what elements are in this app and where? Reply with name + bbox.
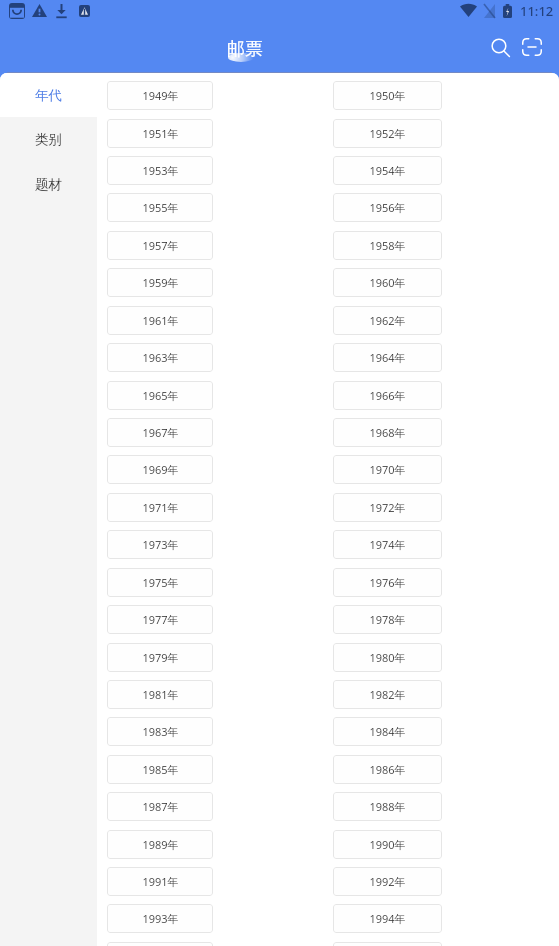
staticText: 1957年	[142, 238, 179, 253]
button[interactable]: 1995年	[107, 942, 213, 946]
button[interactable]: 1966年	[333, 381, 442, 410]
button[interactable]: 1963年	[107, 343, 213, 372]
button[interactable]: 1973年	[107, 530, 213, 559]
staticText: 1963年	[142, 350, 179, 365]
staticText: 1970年	[369, 462, 406, 477]
button[interactable]: 1952年	[333, 119, 442, 148]
button[interactable]: 1976年	[333, 568, 442, 597]
staticText: 1977年	[142, 612, 179, 627]
button[interactable]: 1965年	[107, 381, 213, 410]
button[interactable]: 1983年	[107, 717, 213, 746]
staticText: 1976年	[369, 575, 406, 590]
staticText: 1990年	[369, 837, 406, 852]
staticText: 1967年	[142, 425, 179, 440]
button[interactable]: 1959年	[107, 268, 213, 297]
staticText: 1973年	[142, 537, 179, 552]
staticText: 1952年	[369, 126, 406, 141]
staticText: 1969年	[142, 462, 179, 477]
staticText: 1986年	[369, 762, 406, 777]
button[interactable]: 1972年	[333, 493, 442, 522]
staticText: 1954年	[369, 163, 406, 178]
staticText: 1989年	[142, 837, 179, 852]
staticText: 1978年	[369, 612, 406, 627]
staticText: 1982年	[369, 687, 406, 702]
staticText: 1966年	[369, 388, 406, 403]
button[interactable]: 1979年	[107, 643, 213, 672]
staticText: 1974年	[369, 537, 406, 552]
button[interactable]: 1991年	[107, 867, 213, 896]
button[interactable]: 1957年	[107, 231, 213, 260]
button[interactable]: 1950年	[333, 81, 442, 110]
button[interactable]: 1968年	[333, 418, 442, 447]
button[interactable]: 1981年	[107, 680, 213, 709]
button[interactable]: 1971年	[107, 493, 213, 522]
button[interactable]: 1980年	[333, 643, 442, 672]
button[interactable]: 1955年	[107, 193, 213, 222]
staticText: 1972年	[369, 500, 406, 515]
staticText: 1975年	[142, 575, 179, 590]
button[interactable]: 1974年	[333, 530, 442, 559]
staticText: 1983年	[142, 724, 179, 739]
staticText: 1961年	[142, 313, 179, 328]
button[interactable]: 1994年	[333, 904, 442, 933]
staticText: 1955年	[142, 200, 179, 215]
staticText: 11:12	[520, 2, 554, 20]
staticText: 1953年	[142, 163, 179, 178]
staticText: 1991年	[142, 874, 179, 889]
staticText: 1988年	[369, 799, 406, 814]
staticText: 1962年	[369, 313, 406, 328]
button[interactable]: 题材	[0, 162, 97, 207]
button[interactable]: Scan code	[512, 27, 552, 67]
staticText: 1987年	[142, 799, 179, 814]
staticText: 邮票	[227, 38, 263, 61]
staticText: 1950年	[369, 88, 406, 103]
button[interactable]: 1975年	[107, 568, 213, 597]
button[interactable]: 1954年	[333, 156, 442, 185]
button[interactable]: 1990年	[333, 830, 442, 859]
staticText: 1960年	[369, 275, 406, 290]
staticText: 类别	[35, 131, 62, 148]
button[interactable]: 1977年	[107, 605, 213, 634]
button[interactable]: 1951年	[107, 119, 213, 148]
staticText: 1971年	[142, 500, 179, 515]
staticText: 1993年	[142, 911, 179, 926]
staticText: 1949年	[142, 88, 179, 103]
button[interactable]: 1996年	[333, 942, 442, 946]
button[interactable]: 1964年	[333, 343, 442, 372]
button[interactable]: 1986年	[333, 755, 442, 784]
staticText: 1958年	[369, 238, 406, 253]
staticText: 题材	[35, 176, 62, 193]
staticText: 1964年	[369, 350, 406, 365]
staticText: 1956年	[369, 200, 406, 215]
staticText: 1994年	[369, 911, 406, 926]
button[interactable]: 1992年	[333, 867, 442, 896]
button[interactable]: 1967年	[107, 418, 213, 447]
staticText: 1959年	[142, 275, 179, 290]
button[interactable]: Search	[480, 27, 520, 67]
staticText: 1992年	[369, 874, 406, 889]
button[interactable]: 1978年	[333, 605, 442, 634]
button[interactable]: 1962年	[333, 306, 442, 335]
staticText: 1980年	[369, 650, 406, 665]
button[interactable]: 1960年	[333, 268, 442, 297]
button[interactable]: 年代	[0, 73, 97, 117]
button[interactable]: 1989年	[107, 830, 213, 859]
button[interactable]: 1984年	[333, 717, 442, 746]
button[interactable]: 1988年	[333, 792, 442, 821]
button[interactable]: 1949年	[107, 81, 213, 110]
button[interactable]: 1970年	[333, 455, 442, 484]
button[interactable]: 1982年	[333, 680, 442, 709]
staticText: 年代	[35, 87, 62, 104]
button[interactable]: 1961年	[107, 306, 213, 335]
staticText: 1979年	[142, 650, 179, 665]
button[interactable]: 1958年	[333, 231, 442, 260]
button[interactable]: 1969年	[107, 455, 213, 484]
button[interactable]: 类别	[0, 117, 97, 162]
button[interactable]: 邮票	[215, 26, 275, 72]
button[interactable]: 1987年	[107, 792, 213, 821]
button[interactable]: 1953年	[107, 156, 213, 185]
button[interactable]: 1985年	[107, 755, 213, 784]
button[interactable]: 1993年	[107, 904, 213, 933]
staticText: 1984年	[369, 724, 406, 739]
button[interactable]: 1956年	[333, 193, 442, 222]
